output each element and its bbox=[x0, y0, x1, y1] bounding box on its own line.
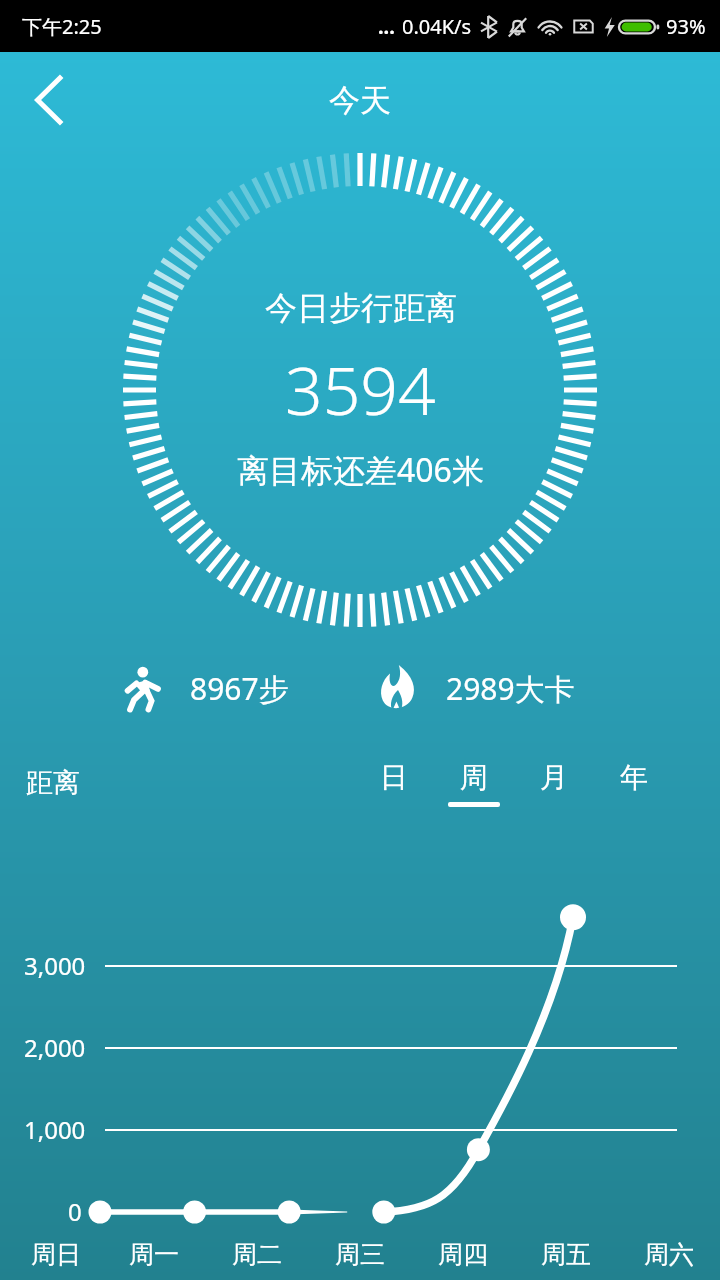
button[interactable]: 距离 bbox=[26, 766, 80, 800]
button[interactable]: 8967步 bbox=[122, 665, 360, 711]
staticText: 周六 bbox=[644, 1239, 694, 1270]
staticText: 8967步 bbox=[190, 668, 289, 709]
staticText: 周一 bbox=[129, 1239, 179, 1270]
button[interactable]: 年 bbox=[594, 760, 674, 807]
staticText: 周五 bbox=[541, 1239, 591, 1270]
button[interactable]: Back bbox=[18, 69, 80, 131]
button[interactable]: 日 bbox=[354, 760, 434, 807]
staticText: 3,000 bbox=[24, 949, 86, 982]
staticText: 3594 bbox=[285, 344, 436, 434]
staticText: 2,000 bbox=[24, 1031, 86, 1064]
staticText: 下午2:25 bbox=[22, 13, 102, 40]
staticText: 0 bbox=[68, 1195, 82, 1228]
staticText: 2989大卡 bbox=[446, 668, 575, 709]
button[interactable]: 月 bbox=[514, 760, 594, 807]
staticText: 0.04K/s bbox=[402, 13, 472, 40]
staticText: 周二 bbox=[232, 1239, 282, 1270]
staticText: 日 bbox=[380, 760, 408, 795]
staticText: 周四 bbox=[438, 1239, 488, 1270]
staticText: 周 bbox=[460, 760, 488, 795]
button[interactable]: 周 bbox=[434, 760, 514, 807]
staticText: 年 bbox=[620, 760, 648, 795]
staticText: 周三 bbox=[335, 1239, 385, 1270]
staticText: 月 bbox=[540, 760, 568, 795]
button[interactable]: 2989大卡 bbox=[378, 664, 720, 712]
staticText: 1,000 bbox=[24, 1113, 86, 1146]
staticText: 周日 bbox=[31, 1239, 81, 1270]
staticText: ... bbox=[378, 13, 395, 40]
staticText: 93% bbox=[666, 13, 706, 40]
staticText: 今日步行距离 bbox=[265, 288, 457, 328]
staticText: 今天 bbox=[329, 81, 391, 120]
staticText: 离目标还差406米 bbox=[237, 448, 484, 492]
staticText: 距离 bbox=[26, 766, 80, 800]
